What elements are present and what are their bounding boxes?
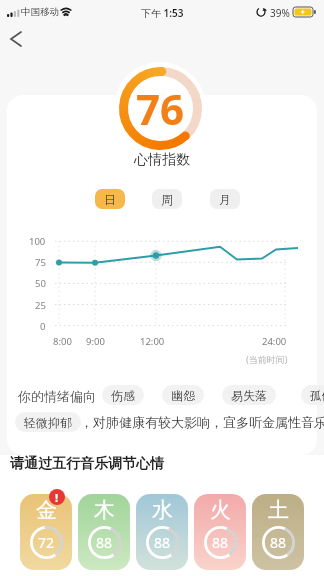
staticText: 12:00 bbox=[140, 335, 165, 348]
staticText: 请通过五行音乐调节心情 bbox=[10, 455, 164, 473]
staticText: 0 bbox=[40, 320, 46, 333]
staticText: (当前时间) bbox=[246, 353, 288, 365]
staticText: 88 bbox=[270, 533, 287, 552]
staticText: 轻微抑郁 bbox=[24, 415, 72, 430]
staticText: 金 bbox=[36, 497, 57, 523]
button[interactable]: 金 bbox=[20, 494, 72, 570]
staticText: 9:00 bbox=[86, 335, 105, 348]
button[interactable]: 土 bbox=[252, 494, 304, 570]
staticText: ! bbox=[55, 490, 59, 505]
staticText: 25 bbox=[35, 299, 46, 312]
staticText: 木 bbox=[94, 497, 115, 523]
button[interactable] bbox=[2, 26, 30, 52]
staticText: 72 bbox=[38, 533, 55, 552]
staticText: ，对肺健康有较大影响，宜多听金属性音乐 bbox=[80, 414, 324, 430]
button[interactable]: 周 bbox=[152, 189, 182, 209]
button[interactable]: 木 bbox=[78, 494, 130, 570]
staticText: 心情指数 bbox=[0, 151, 324, 169]
staticText: 易失落 bbox=[231, 388, 267, 403]
staticText: 孤僻 bbox=[310, 388, 324, 403]
staticText: 39% bbox=[270, 6, 290, 20]
staticText: 月 bbox=[219, 192, 231, 207]
staticText: 土 bbox=[268, 497, 289, 523]
staticText: 水 bbox=[152, 497, 173, 523]
staticText: 幽怨 bbox=[171, 388, 195, 403]
staticText: 100 bbox=[29, 235, 46, 248]
staticText: 周 bbox=[161, 192, 173, 207]
staticText: 76 bbox=[136, 80, 185, 137]
staticText: 中国移动 bbox=[21, 6, 59, 18]
staticText: 8:00 bbox=[53, 335, 72, 348]
staticText: 88 bbox=[154, 533, 171, 552]
staticText: 88 bbox=[212, 533, 229, 552]
staticText: 伤感 bbox=[111, 388, 135, 403]
staticText: 24:00 bbox=[262, 335, 287, 348]
staticText: 88 bbox=[96, 533, 113, 552]
staticText: 50 bbox=[35, 277, 46, 290]
staticText: 下午 1:53 bbox=[141, 6, 184, 20]
button[interactable]: 日 bbox=[95, 189, 125, 209]
staticText: 火 bbox=[210, 497, 231, 523]
button[interactable]: 月 bbox=[210, 189, 240, 209]
button[interactable]: 火 bbox=[194, 494, 246, 570]
staticText: 75 bbox=[35, 256, 46, 269]
staticText: 日 bbox=[104, 192, 116, 207]
button[interactable]: 水 bbox=[136, 494, 188, 570]
staticText: 你的情绪偏向 bbox=[18, 388, 96, 404]
